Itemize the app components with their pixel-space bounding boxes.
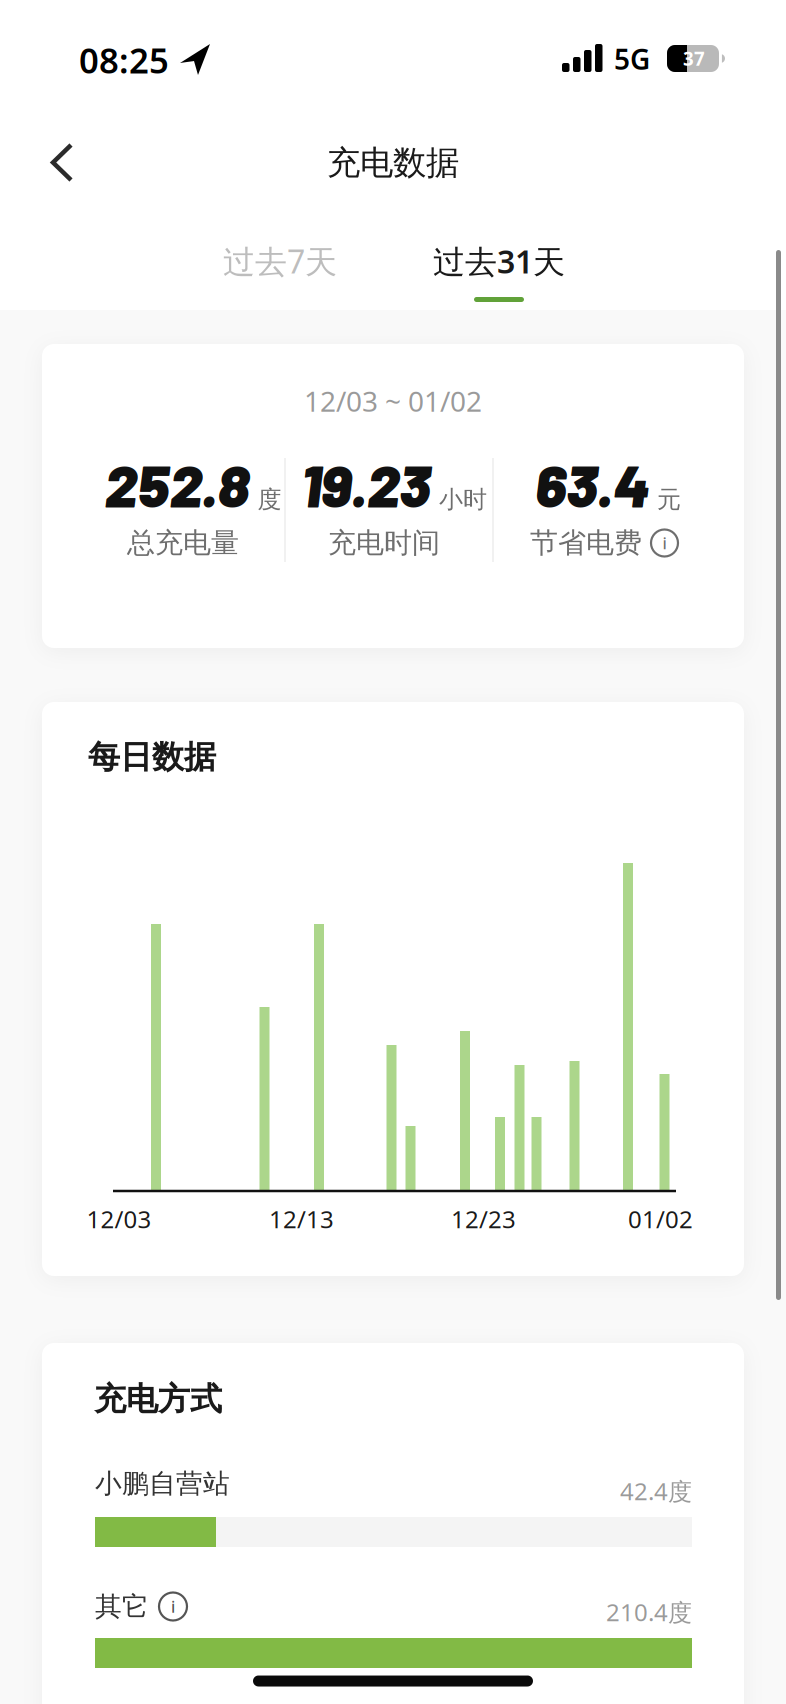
staticText: 252.8: [104, 449, 249, 519]
staticText: 充电数据: [327, 142, 459, 183]
staticText: 5G: [614, 40, 650, 78]
staticText: 01/02: [628, 1203, 693, 1235]
staticText: i: [662, 532, 666, 554]
staticText: 42.4度: [620, 1475, 692, 1507]
staticText: 过去7天: [223, 240, 337, 282]
staticText: 63.4: [535, 449, 649, 519]
button[interactable]: 过去31天: [399, 223, 599, 299]
staticText: 19.23: [301, 449, 431, 519]
staticText: 其它: [95, 1590, 149, 1623]
staticText: 元: [657, 485, 681, 514]
staticText: 12/03 ~ 01/02: [304, 382, 482, 420]
staticText: 210.4度: [606, 1596, 692, 1628]
staticText: 12/23: [451, 1203, 516, 1235]
staticText: 08:25: [79, 37, 169, 83]
staticText: 充电方式: [94, 1379, 222, 1419]
button[interactable]: 过去7天: [180, 223, 380, 299]
staticText: 过去31天: [433, 240, 565, 282]
button[interactable]: 其它说明: [159, 1592, 187, 1620]
staticText: i: [171, 1596, 175, 1617]
staticText: 充电时间: [328, 526, 440, 560]
staticText: 12/13: [269, 1203, 334, 1235]
staticText: 37: [683, 46, 705, 71]
staticText: 12/03: [86, 1203, 151, 1235]
button[interactable]: Back: [18, 118, 106, 206]
staticText: 小时: [439, 485, 487, 514]
button[interactable]: 节省电费说明: [651, 529, 678, 556]
staticText: 小鹏自营站: [95, 1467, 230, 1500]
staticText: 度: [257, 485, 281, 514]
staticText: 每日数据: [88, 737, 216, 777]
staticText: 总充电量: [127, 526, 239, 560]
staticText: 节省电费: [530, 526, 642, 560]
